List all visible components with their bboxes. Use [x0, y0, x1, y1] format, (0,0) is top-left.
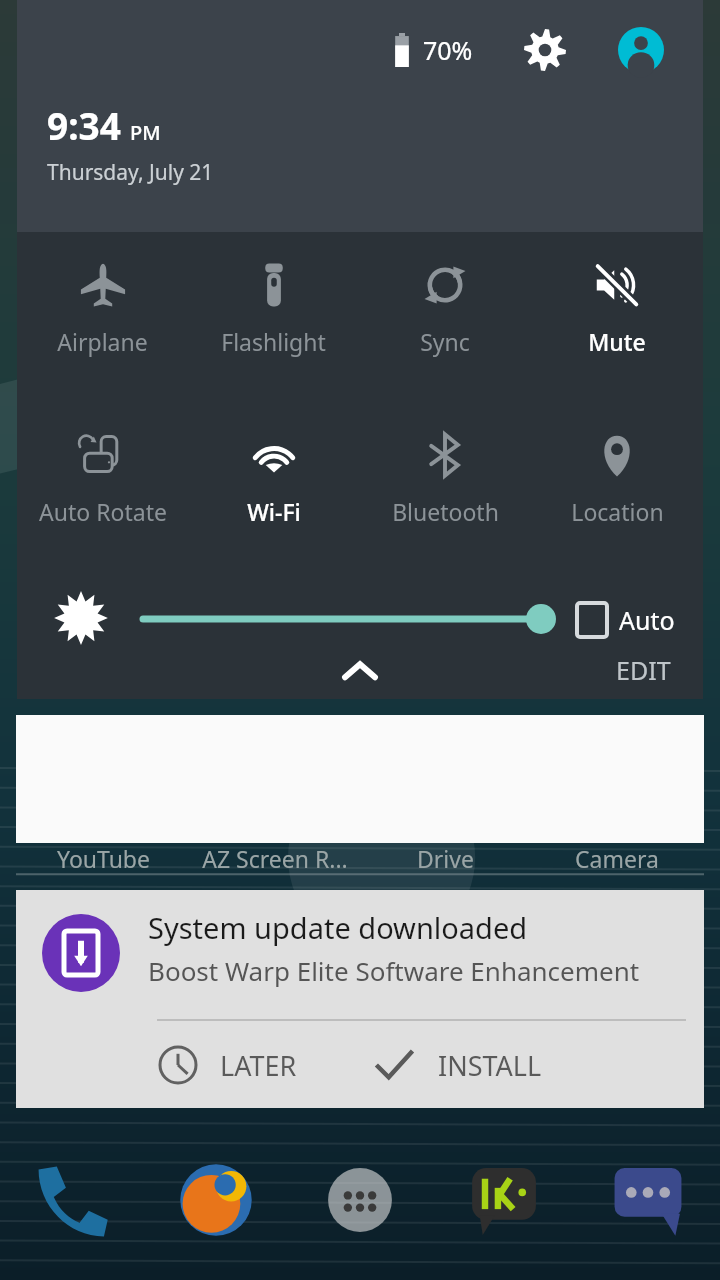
- staticText: Auto Rotate: [39, 496, 167, 527]
- button[interactable]: Messaging: [576, 1150, 720, 1250]
- button[interactable]: User profile: [615, 24, 667, 76]
- button[interactable]: Settings: [519, 24, 571, 76]
- staticText: Flashlight: [221, 326, 326, 357]
- button[interactable]: AZ Screen R...: [189, 843, 360, 874]
- button[interactable]: Location: [531, 402, 703, 572]
- button[interactable]: Auto Rotate: [17, 402, 188, 572]
- button[interactable]: System update downloaded: [16, 890, 704, 1108]
- staticText: EDIT: [616, 653, 671, 687]
- staticText: LATER: [220, 1047, 297, 1084]
- staticText: Camera: [575, 843, 659, 874]
- button[interactable]: YouTube: [18, 843, 189, 874]
- staticText: 70%: [423, 33, 473, 67]
- button[interactable]: Flashlight: [188, 232, 359, 402]
- button[interactable]: Mute: [531, 232, 703, 402]
- button[interactable]: Drive: [360, 843, 531, 874]
- staticText: INSTALL: [438, 1047, 542, 1084]
- staticText: Boost Warp Elite Software Enhancement: [148, 953, 640, 988]
- staticText: 9:34: [47, 100, 121, 150]
- button[interactable]: Collapse: [328, 647, 392, 695]
- staticText: PM: [130, 119, 161, 146]
- staticText: Wi-Fi: [247, 496, 301, 527]
- button[interactable]: LATER: [16, 1022, 360, 1108]
- button[interactable]: Wi-Fi: [188, 402, 359, 572]
- staticText: Mute: [588, 326, 646, 357]
- button[interactable]: EDIT: [616, 653, 671, 687]
- button[interactable]: Kik: [432, 1150, 576, 1250]
- staticText: Drive: [417, 843, 474, 874]
- staticText: YouTube: [57, 843, 150, 874]
- button[interactable]: Camera: [531, 843, 702, 874]
- button[interactable]: [127, 602, 567, 636]
- button[interactable]: Bluetooth: [359, 402, 531, 572]
- button[interactable]: Phone: [0, 1150, 144, 1250]
- staticText: AZ Screen R...: [202, 843, 348, 874]
- button[interactable]: Firefox: [144, 1150, 288, 1250]
- button[interactable]: INSTALL: [360, 1022, 704, 1108]
- staticText: Thursday, July 21: [47, 158, 214, 187]
- staticText: Sync: [420, 326, 470, 357]
- staticText: Airplane: [57, 326, 148, 357]
- button[interactable]: Apps: [288, 1150, 432, 1250]
- button[interactable]: Sync: [359, 232, 531, 402]
- staticText: Bluetooth: [392, 496, 499, 527]
- staticText: Location: [571, 496, 664, 527]
- button[interactable]: Auto: [577, 600, 675, 640]
- staticText: System update downloaded: [148, 908, 528, 947]
- button[interactable]: Airplane: [17, 232, 188, 402]
- staticText: Auto: [619, 603, 675, 637]
